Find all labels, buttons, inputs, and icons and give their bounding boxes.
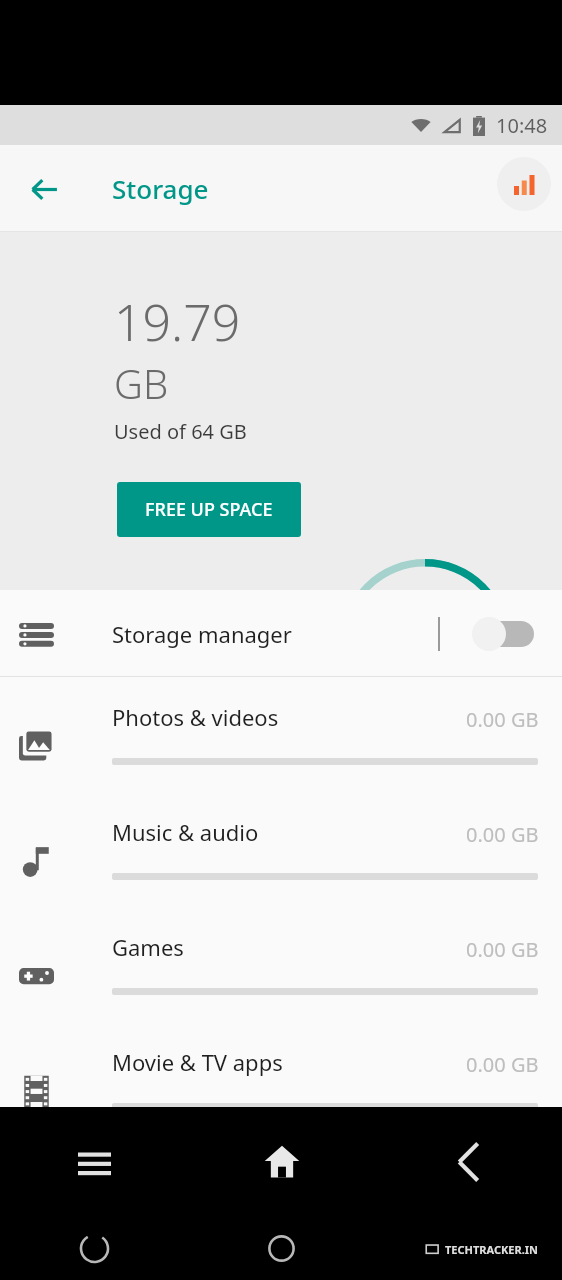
button[interactable]: Back xyxy=(16,161,72,217)
staticText: Storage xyxy=(112,171,209,206)
button[interactable]: Movie & TV apps xyxy=(0,1022,562,1107)
staticText: FREE UP SPACE xyxy=(145,497,273,522)
button[interactable]: Photos & videos xyxy=(0,677,562,792)
button[interactable]: Home xyxy=(188,1107,375,1217)
button[interactable]: Data usage xyxy=(497,157,551,211)
staticText: 31% xyxy=(390,607,460,655)
staticText: 0.00 GB xyxy=(466,821,539,848)
staticText: 19.79 xyxy=(114,288,241,356)
button[interactable]: Storage manager xyxy=(0,590,562,677)
button[interactable]: Home button xyxy=(188,1217,375,1280)
staticText: TECHTRACKER.IN xyxy=(445,1242,538,1257)
staticText: Used of 64 GB xyxy=(114,418,247,445)
staticText: Movie & TV apps xyxy=(112,1047,283,1077)
staticText: GB xyxy=(114,356,169,410)
staticText: Music & audio xyxy=(112,817,259,847)
staticText: used xyxy=(405,657,446,682)
button[interactable]: Games xyxy=(0,907,562,1022)
button[interactable]: FREE UP SPACE xyxy=(117,482,301,537)
staticText: 10:48 xyxy=(496,112,548,139)
button[interactable]: Storage manager toggle xyxy=(472,611,534,657)
staticText: 0.00 GB xyxy=(466,1051,539,1078)
button[interactable]: Back xyxy=(375,1107,562,1217)
button[interactable]: Music & audio xyxy=(0,792,562,907)
button[interactable]: Menu xyxy=(0,1107,188,1217)
staticText: Photos & videos xyxy=(112,702,279,732)
button[interactable]: Recent apps xyxy=(0,1217,188,1280)
staticText: Games xyxy=(112,932,184,962)
staticText: 0.00 GB xyxy=(466,936,539,963)
staticText: Storage manager xyxy=(112,619,292,649)
staticText: 0.00 GB xyxy=(466,706,539,733)
